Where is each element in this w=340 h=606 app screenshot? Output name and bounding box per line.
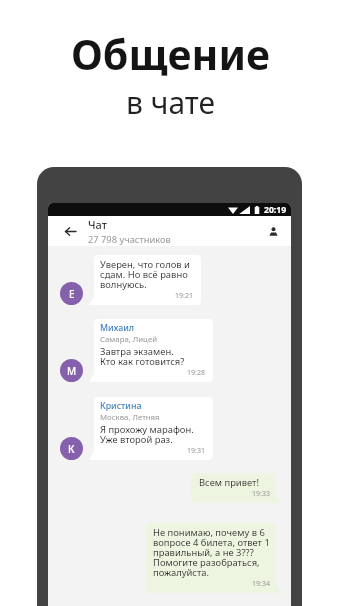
staticText: Москва, Летняя (100, 412, 160, 423)
staticText: Чат (88, 217, 107, 232)
button[interactable]: Кристина (89, 397, 213, 460)
staticText: Завтра экзамен. Кто как готовится? (100, 345, 185, 368)
staticText: 19:33 (252, 489, 270, 499)
staticText: 20:19 (264, 204, 287, 216)
button[interactable]: Всем привет! (191, 473, 281, 503)
staticText: Михаил (100, 322, 135, 334)
button[interactable]: Михаил (89, 319, 213, 382)
staticText: 19:31 (187, 446, 205, 456)
staticText: Всем привет! (199, 476, 259, 489)
staticText: Кристина (100, 400, 142, 412)
staticText: Уверен, что голов и сдам. Но всё равно в… (100, 258, 190, 291)
staticText: Общение (71, 26, 270, 82)
staticText: К (68, 442, 75, 456)
button[interactable]: Participants (264, 222, 282, 240)
staticText: Е (69, 287, 75, 301)
staticText: Самара, Лицей (100, 334, 158, 345)
staticText: Не понимаю, почему в 6 вопросе 4 билета,… (153, 526, 270, 579)
staticText: 19:34 (252, 579, 270, 589)
staticText: 19:28 (187, 368, 205, 378)
staticText: 27 798 участников (88, 233, 171, 246)
staticText: М (67, 364, 77, 378)
staticText: Я прохожу марафон. Уже второй раз. (100, 423, 194, 446)
staticText: в чате (126, 82, 215, 123)
staticText: 19:21 (175, 291, 193, 301)
button[interactable]: Back (61, 222, 79, 240)
button[interactable]: Уверен, что голов и сдам. Но всё равно в… (89, 255, 201, 305)
button[interactable]: Не понимаю, почему в 6 вопросе 4 билета,… (145, 523, 281, 593)
